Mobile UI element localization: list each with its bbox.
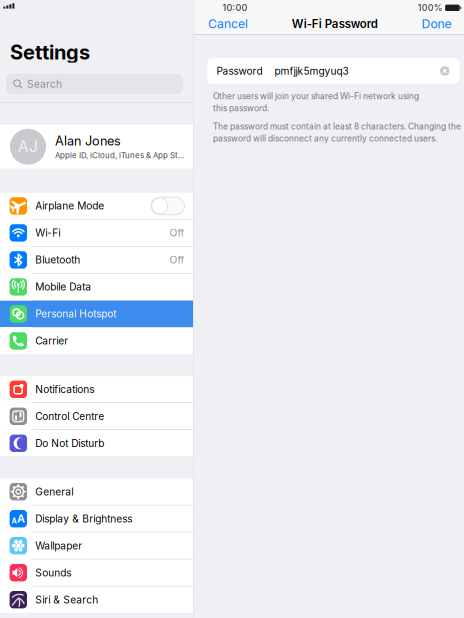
staticText: A bbox=[11, 516, 16, 525]
button[interactable]: Carrier bbox=[0, 328, 193, 354]
staticText: Alan Jones bbox=[55, 133, 121, 149]
staticText: Wi-Fi bbox=[35, 227, 60, 239]
staticText: Off bbox=[169, 227, 184, 239]
staticText: Done bbox=[421, 16, 451, 31]
staticText: Notifications bbox=[35, 383, 94, 395]
button[interactable]: Bluetooth bbox=[0, 247, 193, 273]
button[interactable]: Airplane Mode bbox=[0, 193, 193, 219]
staticText: 100% bbox=[418, 2, 443, 13]
staticText: Other users will join your shared Wi-Fi … bbox=[213, 91, 419, 101]
button[interactable]: Notifications bbox=[0, 376, 193, 402]
staticText: Search bbox=[27, 78, 62, 90]
staticText: Personal Hotspot bbox=[35, 308, 116, 320]
staticText: pmfjjk5mgyuq3 bbox=[275, 65, 349, 77]
staticText: A bbox=[17, 512, 25, 525]
button[interactable]: Siri & Search bbox=[0, 586, 193, 613]
staticText: Carrier bbox=[35, 335, 68, 347]
button[interactable]: A bbox=[0, 505, 193, 532]
button[interactable]: Done bbox=[418, 14, 454, 33]
staticText: Sounds bbox=[35, 567, 71, 579]
button[interactable]: General bbox=[0, 478, 193, 505]
staticText: Off bbox=[169, 254, 184, 266]
staticText: Password bbox=[217, 65, 263, 77]
button[interactable]: Do Not Disturb bbox=[0, 430, 193, 456]
button[interactable]: Wallpaper bbox=[0, 532, 193, 559]
staticText: password will disconnect any currently c… bbox=[213, 133, 437, 143]
staticText: Display & Brightness bbox=[35, 513, 132, 525]
button[interactable]: Sounds bbox=[0, 559, 193, 586]
button[interactable]: Clear password bbox=[440, 66, 449, 76]
button[interactable]: AJ bbox=[0, 125, 193, 169]
staticText: Siri & Search bbox=[35, 594, 98, 606]
staticText: Control Centre bbox=[35, 410, 104, 422]
staticText: The password must contain at least 8 cha… bbox=[213, 121, 461, 131]
staticText: AJ bbox=[18, 137, 38, 156]
button[interactable]: Cancel bbox=[205, 14, 251, 33]
staticText: Wallpaper bbox=[35, 540, 82, 552]
button[interactable]: Personal Hotspot bbox=[0, 301, 193, 327]
button[interactable]: Control Centre bbox=[0, 403, 193, 429]
staticText: this password. bbox=[213, 103, 269, 113]
staticText: Bluetooth bbox=[35, 254, 80, 266]
staticText: General bbox=[35, 486, 73, 498]
staticText: Do Not Disturb bbox=[35, 437, 104, 449]
button[interactable]: Mobile Data bbox=[0, 274, 193, 300]
staticText: Settings bbox=[10, 40, 90, 64]
staticText: Apple ID, iCloud, iTunes & App St... bbox=[55, 151, 184, 160]
button[interactable]: Wi-Fi bbox=[0, 220, 193, 246]
staticText: Mobile Data bbox=[35, 281, 91, 293]
staticText: Cancel bbox=[208, 16, 248, 31]
staticText: Airplane Mode bbox=[35, 200, 104, 212]
staticText: 10:00 bbox=[223, 2, 248, 13]
staticText: Wi-Fi Password bbox=[292, 17, 378, 31]
